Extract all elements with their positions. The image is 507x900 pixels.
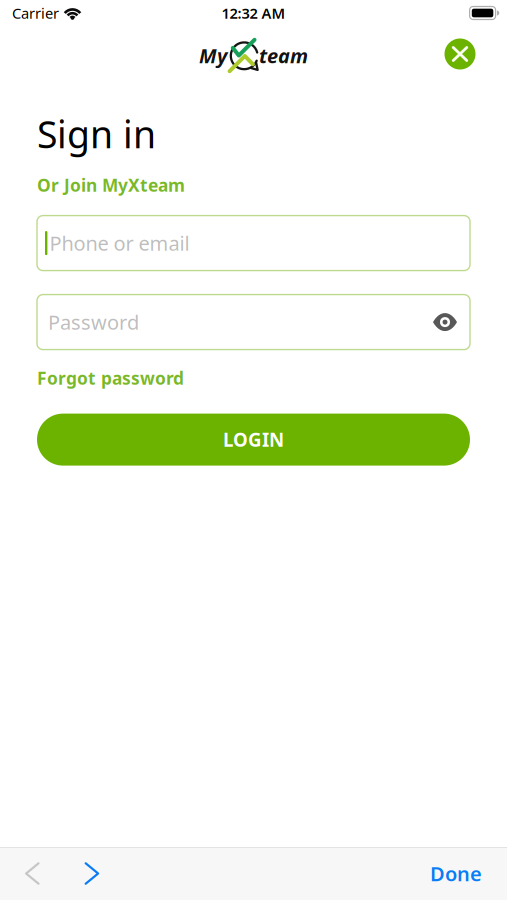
button[interactable]: Next field <box>62 847 122 900</box>
button[interactable]: Previous field <box>0 847 62 900</box>
button[interactable]: Phone or email <box>37 216 470 271</box>
staticText: Sign in <box>37 109 156 159</box>
button[interactable]: Close <box>438 32 482 76</box>
staticText: 12:32 AM <box>221 3 285 23</box>
staticText: Done <box>430 860 482 887</box>
button[interactable]: Or Join MyXteam <box>37 159 185 216</box>
staticText: Forgot password <box>37 367 184 390</box>
staticText: Password <box>48 309 139 335</box>
button[interactable]: Done <box>410 847 507 900</box>
button[interactable]: LOGIN <box>37 414 470 466</box>
staticText: team <box>259 42 308 69</box>
button[interactable]: Password <box>37 295 470 350</box>
button[interactable]: Show password <box>433 314 457 330</box>
staticText: LOGIN <box>223 427 284 452</box>
staticText: Or Join MyXteam <box>37 174 185 197</box>
staticText: Carrier <box>12 3 59 23</box>
staticText: My <box>199 42 227 69</box>
button[interactable]: Forgot password <box>37 350 184 414</box>
staticText: Phone or email <box>49 230 189 256</box>
